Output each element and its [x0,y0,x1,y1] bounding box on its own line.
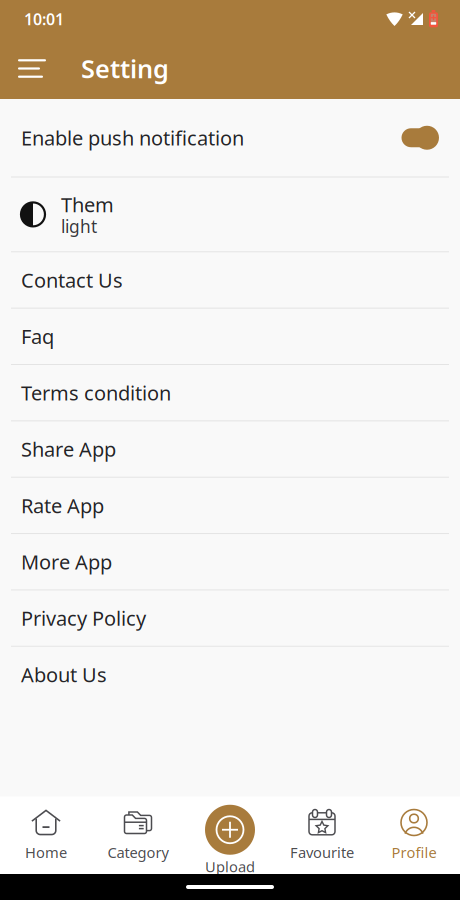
staticText: Them [61,191,114,218]
button[interactable]: Them [0,177,460,252]
button[interactable]: Rate App [0,478,460,534]
staticText: Faq [21,323,54,350]
button[interactable]: Home [0,805,92,865]
staticText: Setting [81,52,169,85]
button[interactable]: Profile [368,805,460,865]
staticText: Upload [205,857,255,876]
button[interactable]: Contact Us [0,252,460,309]
staticText: 10:01 [24,8,64,30]
button[interactable]: Menu [14,51,50,85]
staticText: Favourite [290,842,354,862]
button[interactable]: Upload [184,797,276,874]
button[interactable]: About Us [0,647,460,702]
button[interactable]: Category [92,805,184,865]
staticText: Share App [21,436,116,462]
staticText: Contact Us [21,267,123,293]
staticText: light [61,215,97,238]
staticText: Enable push notification [21,124,244,151]
staticText: Terms condition [21,379,171,406]
button[interactable]: Terms condition [0,365,460,421]
staticText: About Us [21,661,107,688]
staticText: More App [21,548,112,575]
staticText: Profile [391,842,436,862]
staticText: Rate App [21,492,104,519]
button[interactable]: Favourite [276,805,368,865]
button[interactable]: Share App [0,421,460,478]
button[interactable]: More App [0,534,460,590]
button[interactable]: Enable push notification [0,99,460,177]
staticText: Home [25,842,67,862]
staticText: Privacy Policy [21,605,146,631]
button[interactable]: Faq [0,309,460,365]
staticText: Category [107,842,168,862]
button[interactable]: Privacy Policy [0,590,460,647]
